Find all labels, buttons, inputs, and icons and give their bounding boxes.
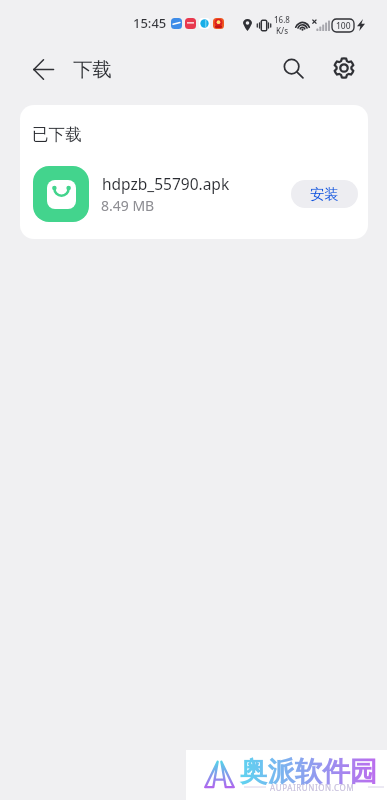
staticText: K/s: [276, 25, 289, 36]
staticText: 15:45: [133, 14, 167, 32]
button[interactable]: hdpzb_55790.apk: [20, 165, 368, 223]
staticText: AUPAIRUNION.COM: [270, 782, 355, 793]
staticText: 奥派软件园: [240, 755, 378, 790]
staticText: 下载: [73, 57, 112, 82]
staticText: 16.8: [274, 14, 290, 25]
button[interactable]: 安装: [291, 180, 358, 208]
staticText: 安装: [310, 185, 339, 203]
button[interactable]: Search: [275, 50, 311, 86]
button[interactable]: 下载: [73, 57, 112, 82]
button[interactable]: Back: [26, 52, 60, 86]
staticText: 8.49 MB: [101, 196, 155, 215]
staticText: hdpzb_55790.apk: [102, 173, 230, 194]
staticText: 100: [336, 20, 351, 32]
button[interactable]: Settings: [326, 50, 362, 86]
staticText: 已下载: [32, 124, 82, 145]
